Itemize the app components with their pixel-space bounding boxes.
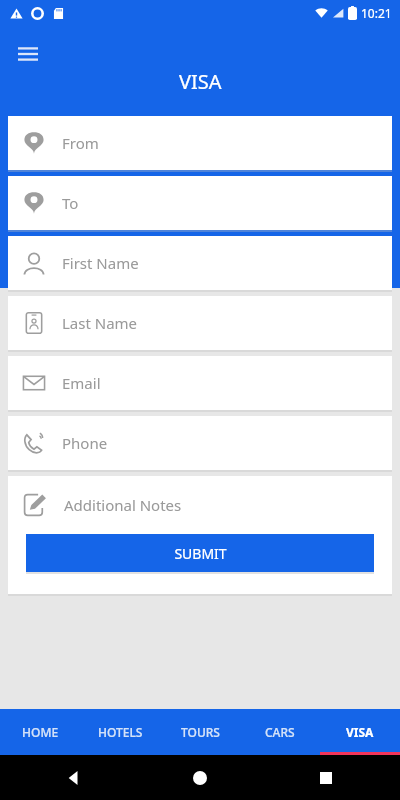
button[interactable]: HOME bbox=[0, 709, 80, 755]
button[interactable]: VISA bbox=[320, 709, 400, 755]
staticText: TOURS bbox=[181, 724, 220, 740]
staticText: SUBMIT bbox=[174, 544, 227, 563]
button[interactable]: Open navigation menu bbox=[8, 34, 48, 74]
button[interactable]: CARS bbox=[240, 709, 320, 755]
button[interactable]: Last Name bbox=[8, 296, 392, 350]
staticText: From bbox=[62, 133, 99, 153]
staticText: Additional Notes bbox=[64, 495, 182, 515]
button[interactable]: SUBMIT bbox=[26, 534, 374, 572]
staticText: To bbox=[62, 193, 79, 213]
button[interactable]: Home bbox=[184, 762, 216, 794]
staticText: Phone bbox=[62, 433, 108, 453]
button[interactable]: HOTELS bbox=[80, 709, 160, 755]
staticText: 10:21 bbox=[361, 5, 392, 21]
button[interactable]: From bbox=[8, 116, 392, 170]
staticText: VISA bbox=[179, 68, 222, 95]
button[interactable]: TOURS bbox=[160, 709, 240, 755]
staticText: Last Name bbox=[62, 313, 138, 333]
staticText: Email bbox=[62, 373, 101, 393]
button[interactable]: Recent apps bbox=[310, 762, 342, 794]
staticText: VISA bbox=[346, 724, 374, 740]
button[interactable]: Email bbox=[8, 356, 392, 410]
button[interactable]: Back bbox=[58, 762, 90, 794]
staticText: HOTELS bbox=[98, 724, 143, 740]
staticText: CARS bbox=[265, 724, 295, 740]
button[interactable]: First Name bbox=[8, 236, 392, 290]
button[interactable]: Additional Notes bbox=[8, 476, 392, 534]
staticText: HOME bbox=[22, 724, 59, 740]
staticText: First Name bbox=[62, 253, 139, 273]
button[interactable]: To bbox=[8, 176, 392, 230]
button[interactable]: Phone bbox=[8, 416, 392, 470]
